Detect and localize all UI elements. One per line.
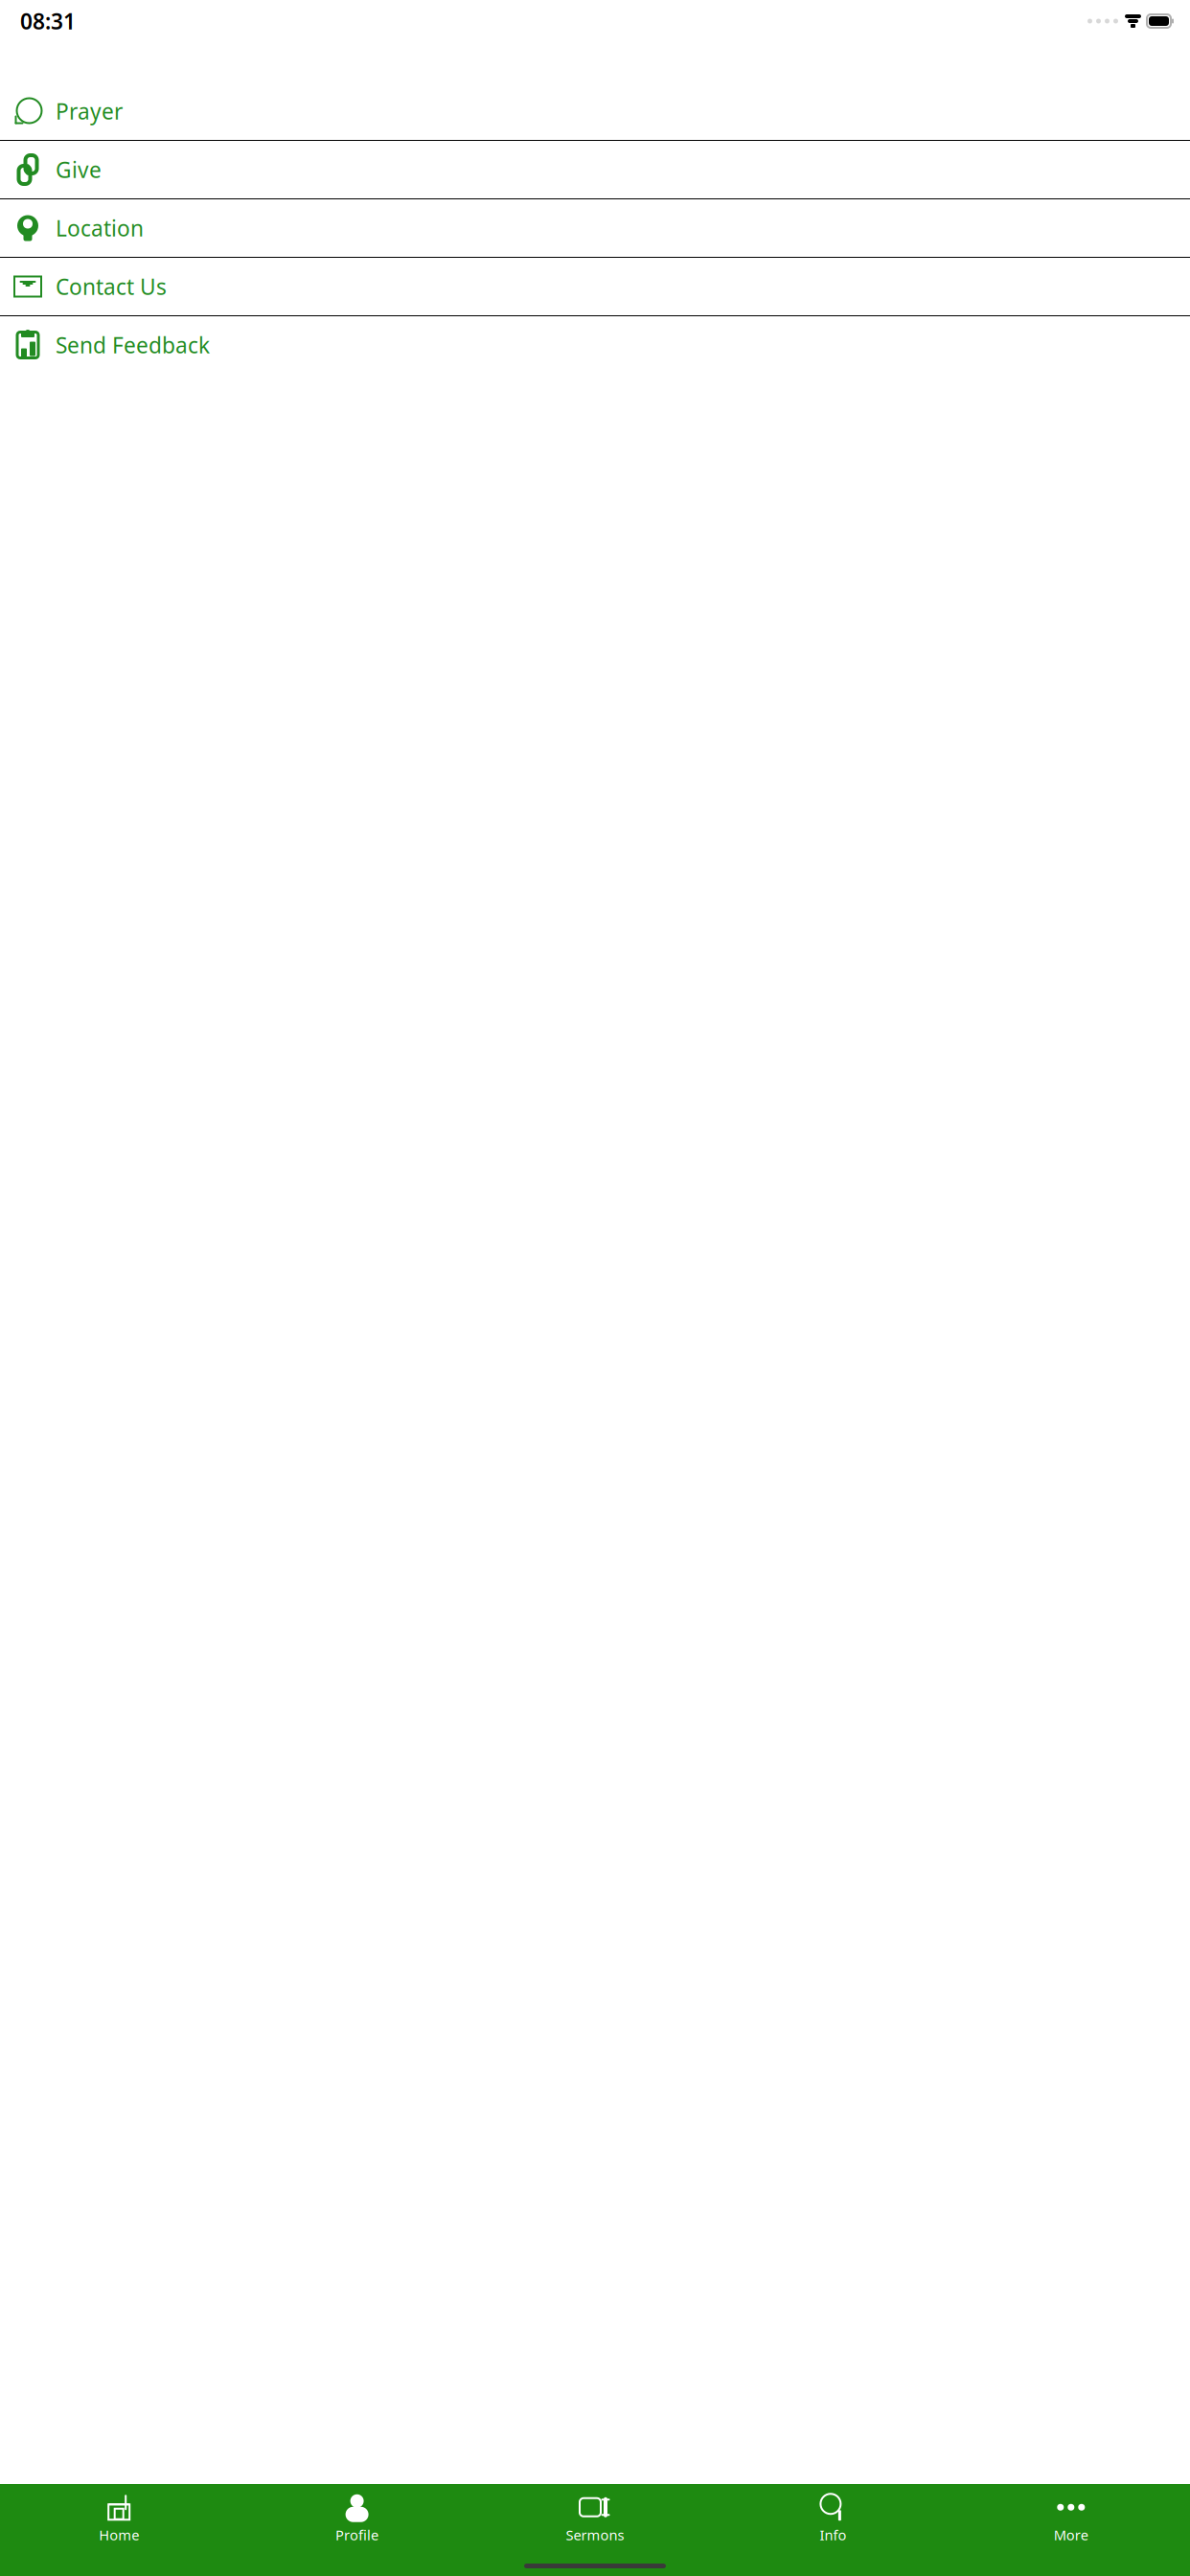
button[interactable]: Location bbox=[0, 199, 1190, 257]
staticText: Prayer bbox=[56, 97, 123, 126]
button[interactable]: Sermons bbox=[476, 2492, 714, 2545]
staticText: Send Feedback bbox=[56, 331, 210, 359]
staticText: Info bbox=[820, 2525, 846, 2544]
staticText: More bbox=[1054, 2525, 1088, 2544]
button[interactable]: Prayer bbox=[0, 82, 1190, 140]
button[interactable]: More bbox=[952, 2492, 1190, 2545]
button[interactable]: Info bbox=[714, 2492, 952, 2545]
staticText: Location bbox=[56, 214, 144, 242]
staticText: Contact Us bbox=[56, 272, 167, 301]
staticText: Sermons bbox=[566, 2525, 624, 2544]
staticText: 08:31 bbox=[20, 7, 76, 35]
button[interactable]: Send Feedback bbox=[0, 316, 1190, 374]
staticText: Home bbox=[99, 2525, 139, 2544]
staticText: Profile bbox=[335, 2525, 379, 2544]
button[interactable]: Give bbox=[0, 141, 1190, 198]
staticText: Give bbox=[56, 155, 102, 184]
button[interactable]: Home bbox=[0, 2492, 238, 2545]
button[interactable]: Profile bbox=[238, 2492, 476, 2545]
button[interactable]: Contact Us bbox=[0, 258, 1190, 315]
